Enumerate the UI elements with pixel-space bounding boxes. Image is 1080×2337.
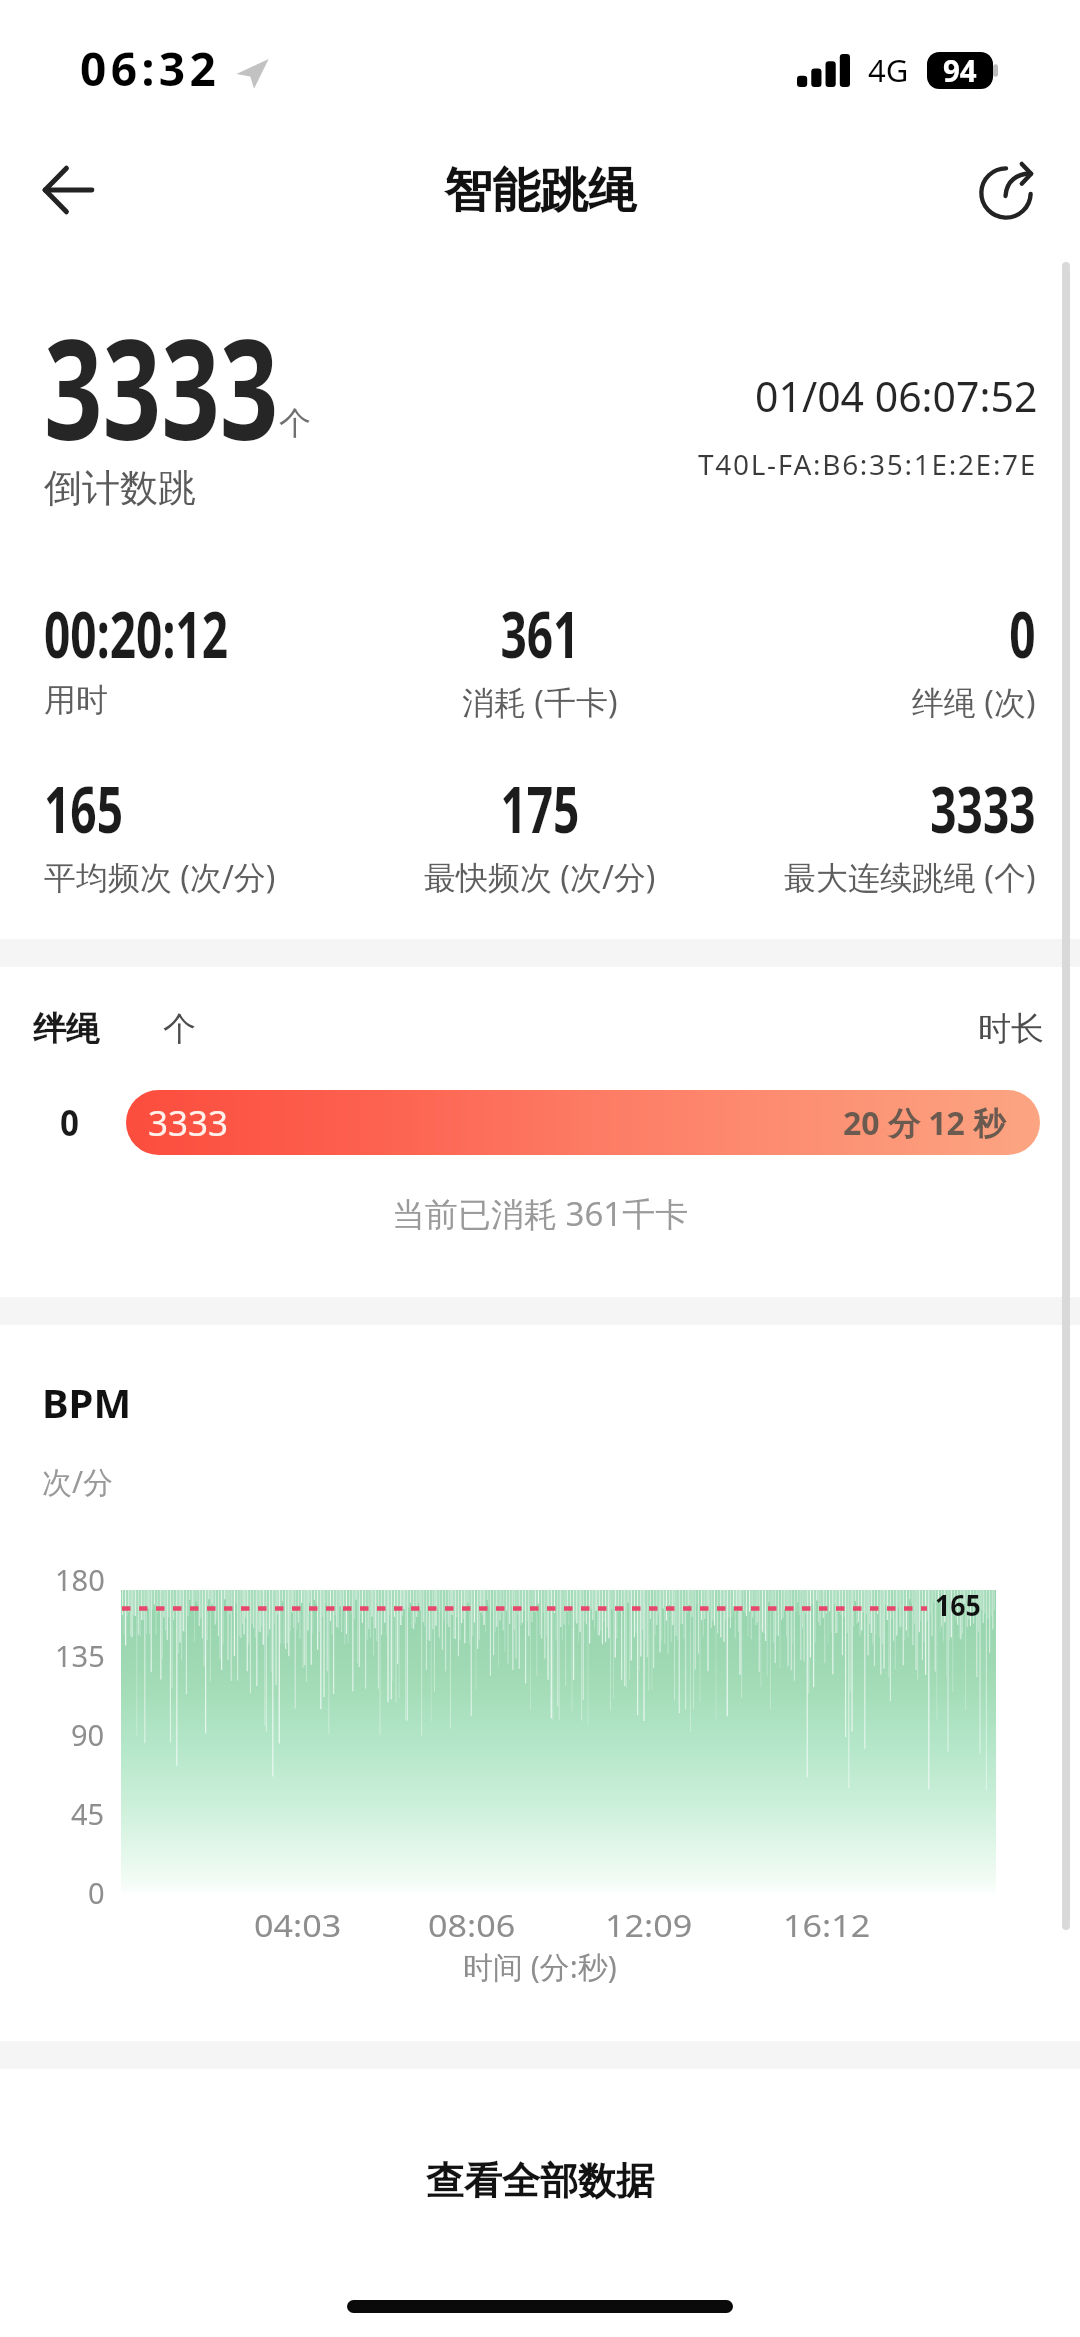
staticText: 94 xyxy=(943,49,977,91)
staticText: 01/04 06:07:52 xyxy=(755,368,1038,424)
staticText: 45 xyxy=(71,1794,105,1833)
staticText: 绊绳 xyxy=(33,1008,99,1050)
staticText: 20 分 12 秒 xyxy=(843,1101,1006,1145)
staticText: 90 xyxy=(71,1715,105,1754)
staticText: 165 xyxy=(44,765,123,852)
staticText: 时长 xyxy=(978,1008,1044,1050)
staticText: 00:20:12 xyxy=(44,590,228,677)
staticText: BPM xyxy=(42,1375,132,1429)
staticText: 165 xyxy=(935,1585,981,1624)
staticText: 0 xyxy=(88,1873,105,1912)
staticText: 最大连续跳绳 (个) xyxy=(784,855,1036,899)
staticText: 最快频次 (次/分) xyxy=(424,855,656,899)
staticText: 180 xyxy=(55,1560,105,1599)
staticText: 当前已消耗 361千卡 xyxy=(392,1191,689,1236)
staticText: 个 xyxy=(279,403,311,443)
staticText: 08:06 xyxy=(428,1904,516,1946)
staticText: 倒计数跳 xyxy=(44,464,196,512)
button[interactable]: 3333 xyxy=(126,1090,1040,1155)
staticText: 16:12 xyxy=(783,1904,871,1946)
staticText: 3333 xyxy=(930,765,1036,852)
staticText: 时间 (分:秒) xyxy=(463,1946,617,1987)
staticText: 06:32 xyxy=(80,37,221,100)
staticText: 0 xyxy=(60,1099,80,1147)
staticText: 智能跳绳 xyxy=(444,161,636,221)
button[interactable]: Back xyxy=(24,149,112,237)
staticText: T40L-FA:B6:35:1E:2E:7E xyxy=(698,445,1038,483)
staticText: 4G xyxy=(868,49,909,91)
staticText: 消耗 (千卡) xyxy=(462,680,618,724)
button[interactable]: 查看全部数据 xyxy=(0,2122,1080,2240)
staticText: 平均频次 (次/分) xyxy=(44,855,276,899)
staticText: 3333 xyxy=(44,291,279,480)
staticText: 12:09 xyxy=(605,1904,693,1946)
button[interactable]: Share xyxy=(960,149,1048,237)
staticText: 3333 xyxy=(148,1099,229,1147)
staticText: 用时 xyxy=(44,680,108,720)
staticText: 361 xyxy=(500,590,580,677)
staticText: 04:03 xyxy=(254,1904,342,1946)
staticText: 查看全部数据 xyxy=(426,2157,654,2205)
staticText: 次/分 xyxy=(42,1461,114,1502)
staticText: 135 xyxy=(55,1636,105,1675)
staticText: 绊绳 (次) xyxy=(912,680,1036,724)
staticText: 175 xyxy=(500,765,580,852)
staticText: 个 xyxy=(163,1008,196,1050)
staticText: 0 xyxy=(1009,590,1036,677)
